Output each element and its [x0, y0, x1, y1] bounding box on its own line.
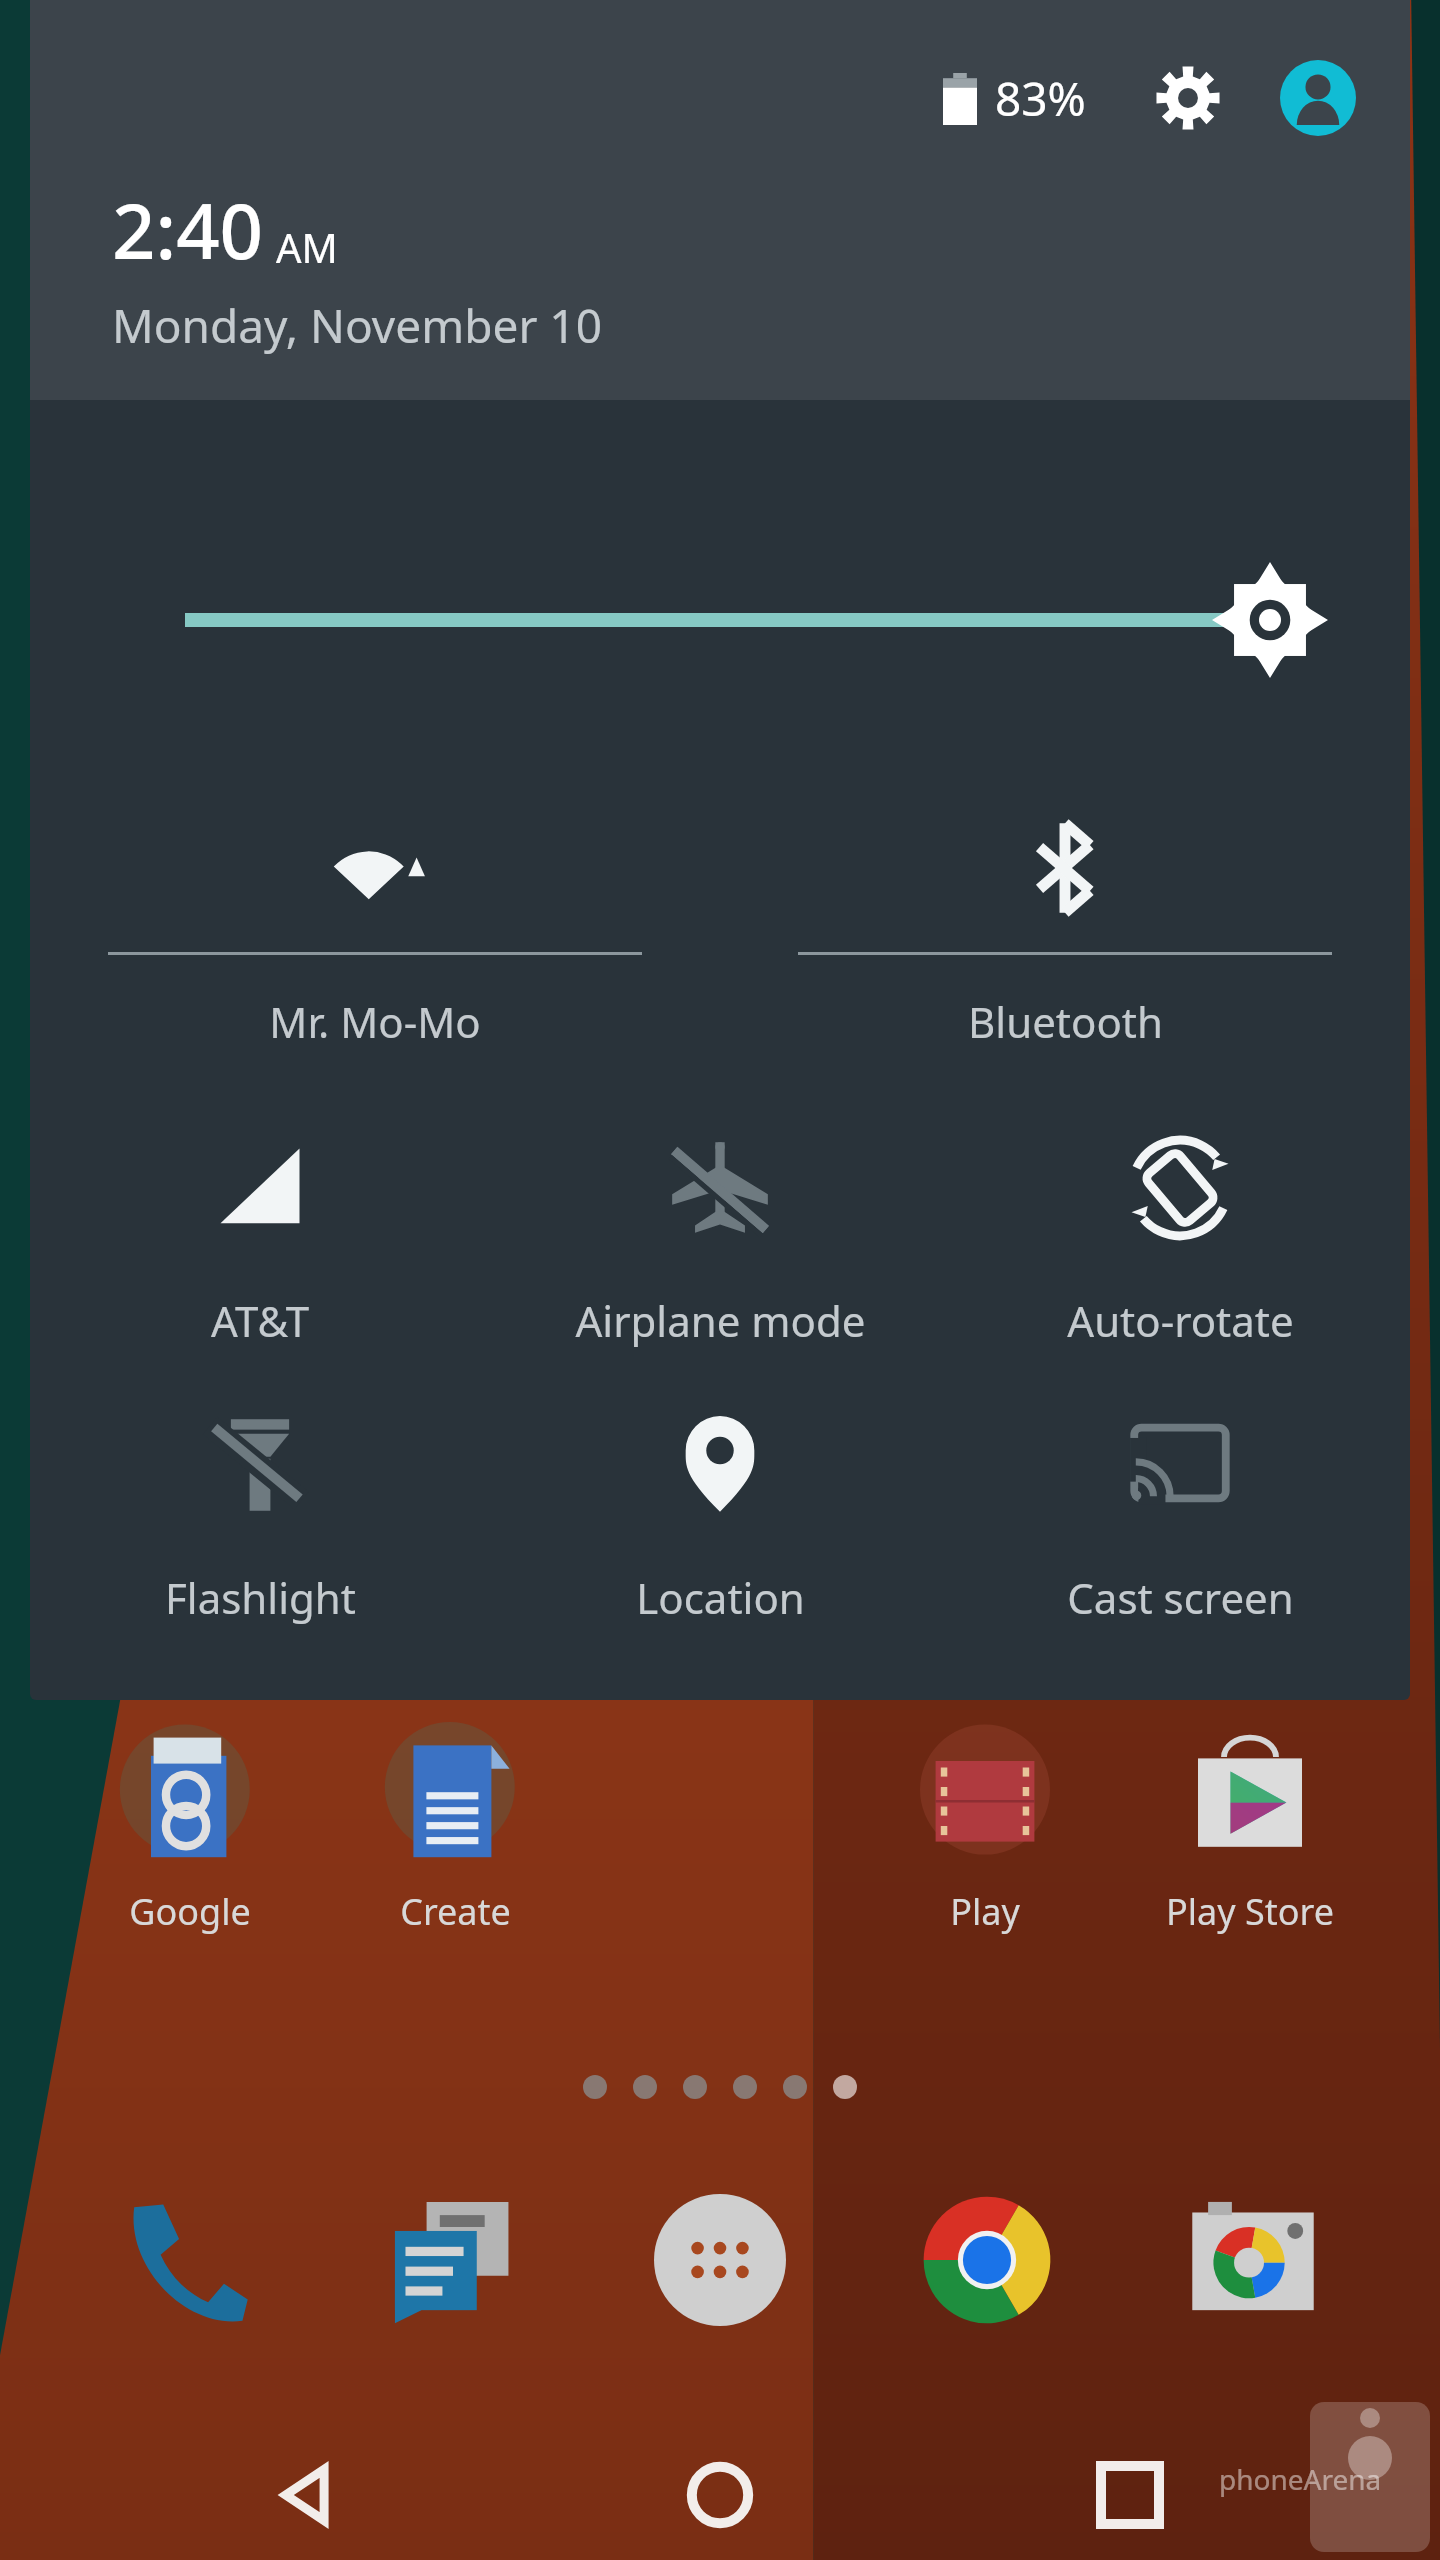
button[interactable]: Play	[880, 1735, 1090, 1936]
staticText: Google	[129, 1887, 251, 1936]
staticText: Location	[636, 1569, 805, 1626]
button[interactable]: Google	[85, 1735, 295, 1936]
button[interactable]: Messages	[373, 2180, 533, 2340]
staticText: AM	[276, 220, 338, 274]
button[interactable]: Auto-rotate	[950, 1130, 1410, 1349]
button[interactable]: AT&T	[30, 1130, 490, 1349]
staticText: Auto-rotate	[1067, 1292, 1294, 1349]
staticText: 2:40	[112, 178, 264, 282]
staticText: Play	[950, 1887, 1020, 1936]
staticText: Flashlight	[165, 1569, 356, 1626]
staticText: Cast screen	[1067, 1569, 1294, 1626]
staticText: Bluetooth	[968, 993, 1163, 1050]
button[interactable]: Play Store	[1145, 1735, 1355, 1936]
button[interactable]: Phone	[107, 2180, 267, 2340]
button[interactable]: Cast screen	[950, 1407, 1410, 1626]
button[interactable]: Mr. Mo-Mo	[30, 810, 720, 1050]
button[interactable]: All apps	[640, 2180, 800, 2340]
button[interactable]: Brightness	[30, 560, 1410, 680]
button[interactable]: Bluetooth	[720, 810, 1410, 1050]
button[interactable]: Airplane mode	[490, 1130, 950, 1349]
button[interactable]: Flashlight	[30, 1407, 490, 1626]
staticText: phoneArena	[1219, 2460, 1382, 2498]
button[interactable]: Chrome	[907, 2180, 1067, 2340]
button[interactable]: Location	[490, 1407, 950, 1626]
button[interactable]: Home	[620, 2430, 820, 2560]
staticText: Play Store	[1166, 1887, 1334, 1936]
staticText: Create	[400, 1887, 511, 1936]
staticText: AT&T	[211, 1292, 309, 1349]
button[interactable]: Create	[350, 1735, 560, 1936]
button[interactable]: 83%	[935, 59, 1094, 138]
button[interactable]: Recent apps	[1030, 2430, 1230, 2560]
staticText: Mr. Mo-Mo	[269, 993, 481, 1050]
staticText: Monday, November 10	[112, 294, 602, 357]
button[interactable]: Settings	[1150, 60, 1226, 136]
button[interactable]: Back	[210, 2430, 410, 2560]
staticText: 83%	[995, 67, 1086, 130]
staticText: Airplane mode	[575, 1292, 866, 1349]
button[interactable]: Camera	[1173, 2180, 1333, 2340]
button[interactable]: User profile	[1278, 58, 1358, 138]
